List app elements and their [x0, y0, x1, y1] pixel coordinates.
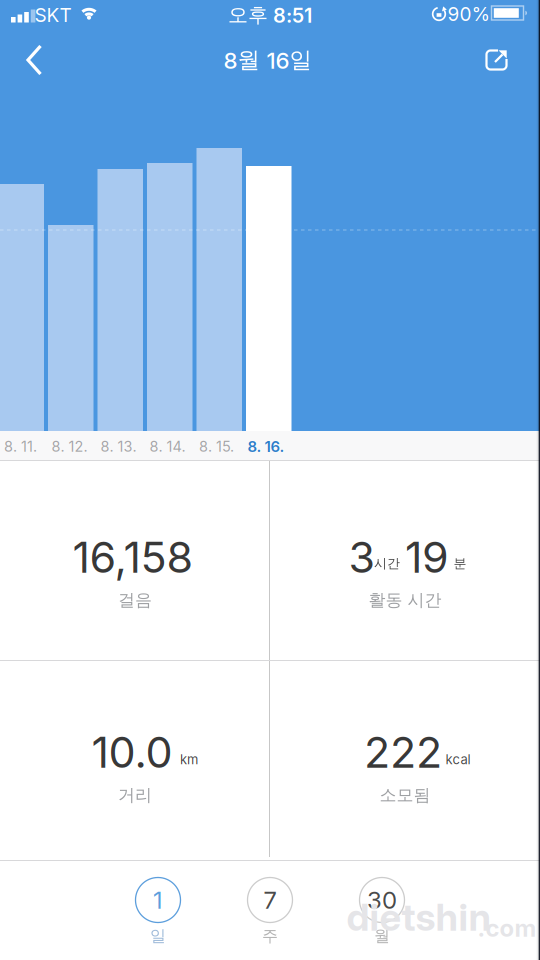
staticText: 걸음 — [118, 589, 152, 611]
button[interactable]: Back — [28, 46, 44, 76]
staticText: km — [180, 752, 198, 767]
staticText: 1 — [153, 885, 163, 914]
staticText: 90% — [447, 2, 490, 25]
staticText: 월 — [374, 926, 390, 946]
staticText: 8. 15. — [199, 438, 234, 455]
button[interactable]: 30 — [346, 867, 418, 953]
staticText: 8. 12. — [51, 438, 87, 455]
staticText: 19 — [405, 531, 449, 583]
staticText: 일 — [150, 926, 166, 946]
staticText: 거리 — [118, 784, 152, 806]
button[interactable]: 7 — [234, 867, 306, 953]
staticText: dietshin — [346, 894, 491, 940]
staticText: 주 — [262, 926, 278, 946]
staticText: 8. 13. — [100, 438, 136, 455]
button[interactable]: 1 — [122, 867, 194, 953]
staticText: 오후 8:51 — [228, 2, 312, 28]
staticText: SKT — [34, 3, 71, 26]
staticText: kcal — [445, 752, 470, 767]
staticText: 8월 16일 — [223, 46, 312, 74]
staticText: 분 — [453, 555, 466, 572]
staticText: 222 — [364, 726, 442, 778]
staticText: 30 — [367, 885, 397, 914]
staticText: 7 — [263, 885, 276, 914]
staticText: 8. 11. — [4, 438, 37, 455]
button[interactable]: Open in new window — [486, 49, 507, 70]
staticText: 시간 — [374, 555, 400, 572]
staticText: .com — [477, 913, 536, 942]
staticText: 8. 16. — [247, 437, 284, 455]
staticText: 소모됨 — [379, 784, 430, 806]
staticText: 3 — [348, 531, 375, 583]
staticText: 10.0 — [91, 726, 172, 778]
staticText: 16,158 — [72, 531, 193, 583]
staticText: 8. 14. — [149, 438, 185, 455]
staticText: 활동 시간 — [368, 589, 441, 611]
